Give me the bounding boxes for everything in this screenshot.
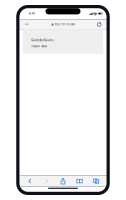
staticText: Transport Sidebar [31, 45, 47, 48]
staticText: http://127.0.0.1:5500 [55, 23, 75, 26]
button[interactable]: Forward [38, 176, 55, 187]
button[interactable]: Back [22, 176, 38, 187]
staticText: 9:41 [29, 12, 35, 15]
button[interactable]: Share [55, 176, 71, 187]
button[interactable]: Bookmarks [71, 176, 88, 187]
staticText: GeeksforGeeks [31, 39, 53, 42]
button[interactable]: Page settings [22, 20, 32, 28]
button[interactable]: Reload [94, 20, 104, 28]
button[interactable]: Tabs [88, 176, 104, 187]
staticText: AA [25, 23, 29, 26]
